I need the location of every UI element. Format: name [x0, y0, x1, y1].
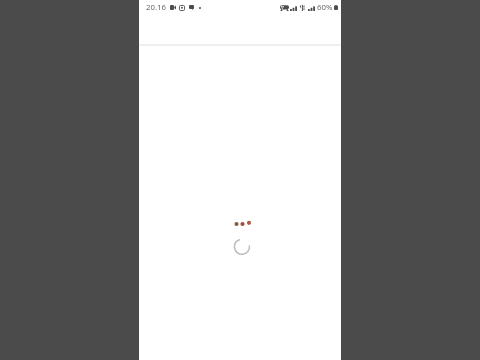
staticText: 20.16	[146, 2, 166, 13]
other: Signal and battery status	[280, 2, 338, 13]
other: Clock and notifications	[146, 2, 201, 13]
staticText: 60%	[317, 2, 333, 13]
other: Loading	[219, 218, 255, 262]
